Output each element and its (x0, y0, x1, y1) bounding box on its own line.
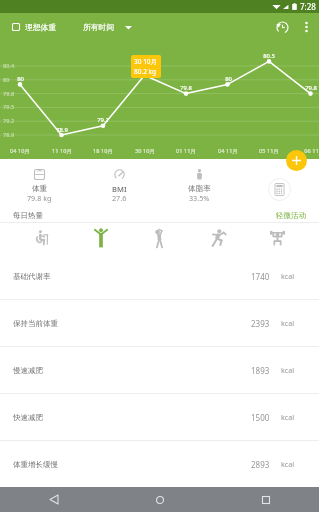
staticText: 所有时间 (83, 22, 115, 32)
button[interactable]: History (269, 14, 295, 40)
staticText: 79.1 (97, 116, 109, 124)
staticText: 80 (17, 75, 24, 83)
button[interactable]: 体重增长缓慢 (0, 441, 319, 487)
button[interactable]: 保持当前体重 (0, 300, 319, 346)
button[interactable]: 快速减肥 (0, 394, 319, 440)
staticText: 79.2 (3, 117, 15, 125)
staticText: 11 10月 (52, 147, 72, 155)
staticText: kcal (281, 271, 295, 281)
staticText: 79.8 kg (27, 193, 52, 203)
staticText: 79.8 (3, 90, 15, 98)
staticText: 30 10月 (134, 57, 158, 66)
button[interactable]: Calculator (268, 178, 291, 201)
staticText: 79.8 (180, 84, 192, 92)
staticText: kcal (281, 365, 295, 375)
staticText: 27.6 (112, 193, 127, 203)
button[interactable]: 基础代谢率 (0, 253, 319, 299)
staticText: kcal (281, 459, 295, 469)
staticText: 理想体重 (25, 22, 57, 32)
staticText: 80.5 (263, 52, 275, 60)
button[interactable]: 体脂率 (159, 159, 239, 208)
staticText: 80.4 (3, 62, 15, 70)
staticText: 80 (225, 75, 232, 83)
staticText: 79.5 (3, 103, 15, 111)
staticText: 快速减肥 (13, 413, 43, 422)
button[interactable]: Add entry (286, 150, 307, 171)
button[interactable]: Home (107, 487, 213, 512)
staticText: 80 (3, 76, 10, 84)
staticText: 慢速减肥 (13, 366, 43, 375)
staticText: kcal (281, 318, 295, 328)
staticText: 33.5% (189, 193, 210, 203)
button[interactable]: More options (295, 16, 317, 38)
staticText: 1740 (251, 271, 270, 282)
button[interactable]: 体重 (0, 159, 79, 208)
button[interactable]: Sedentary (12, 223, 71, 253)
staticText: 体重增长缓慢 (13, 460, 58, 469)
staticText: 1893 (251, 365, 270, 376)
staticText: 78.9 (56, 126, 68, 134)
staticText: 每日热量 (13, 211, 43, 220)
button[interactable]: Active (189, 223, 248, 253)
staticText: 79.8 (305, 84, 317, 92)
staticText: 05 11月 (259, 147, 279, 155)
staticText: 06 11 (304, 147, 319, 155)
staticText: 保持当前体重 (13, 319, 58, 328)
button[interactable]: 慢速减肥 (0, 347, 319, 393)
button[interactable]: 所有时间 (79, 18, 136, 36)
button[interactable]: Moderate (130, 223, 189, 253)
staticText: 2893 (251, 459, 270, 470)
staticText: 2393 (251, 318, 270, 329)
staticText: 体重 (32, 184, 48, 194)
staticText: BMI (112, 184, 127, 194)
button[interactable]: 理想体重 (8, 18, 61, 36)
staticText: 78.9 (3, 131, 15, 139)
button[interactable]: Light activity (71, 223, 130, 253)
button[interactable]: Very active (248, 223, 307, 253)
staticText: 18 10月 (93, 147, 113, 155)
staticText: 1500 (251, 412, 270, 423)
button[interactable]: BMI (79, 159, 159, 208)
staticText: 7:28 (300, 1, 316, 12)
staticText: 04 10月 (10, 147, 30, 155)
staticText: 体脂率 (188, 184, 211, 194)
staticText: 基础代谢率 (13, 272, 51, 281)
staticText: 04 11月 (218, 147, 238, 155)
button[interactable]: Recents (213, 487, 319, 512)
staticText: kcal (281, 412, 295, 422)
button[interactable]: Back (0, 487, 107, 512)
staticText: 30 10月 (135, 147, 155, 155)
staticText: 80.2 kg (134, 67, 157, 76)
staticText: 轻微活动 (276, 211, 306, 220)
staticText: 01 11月 (176, 147, 196, 155)
